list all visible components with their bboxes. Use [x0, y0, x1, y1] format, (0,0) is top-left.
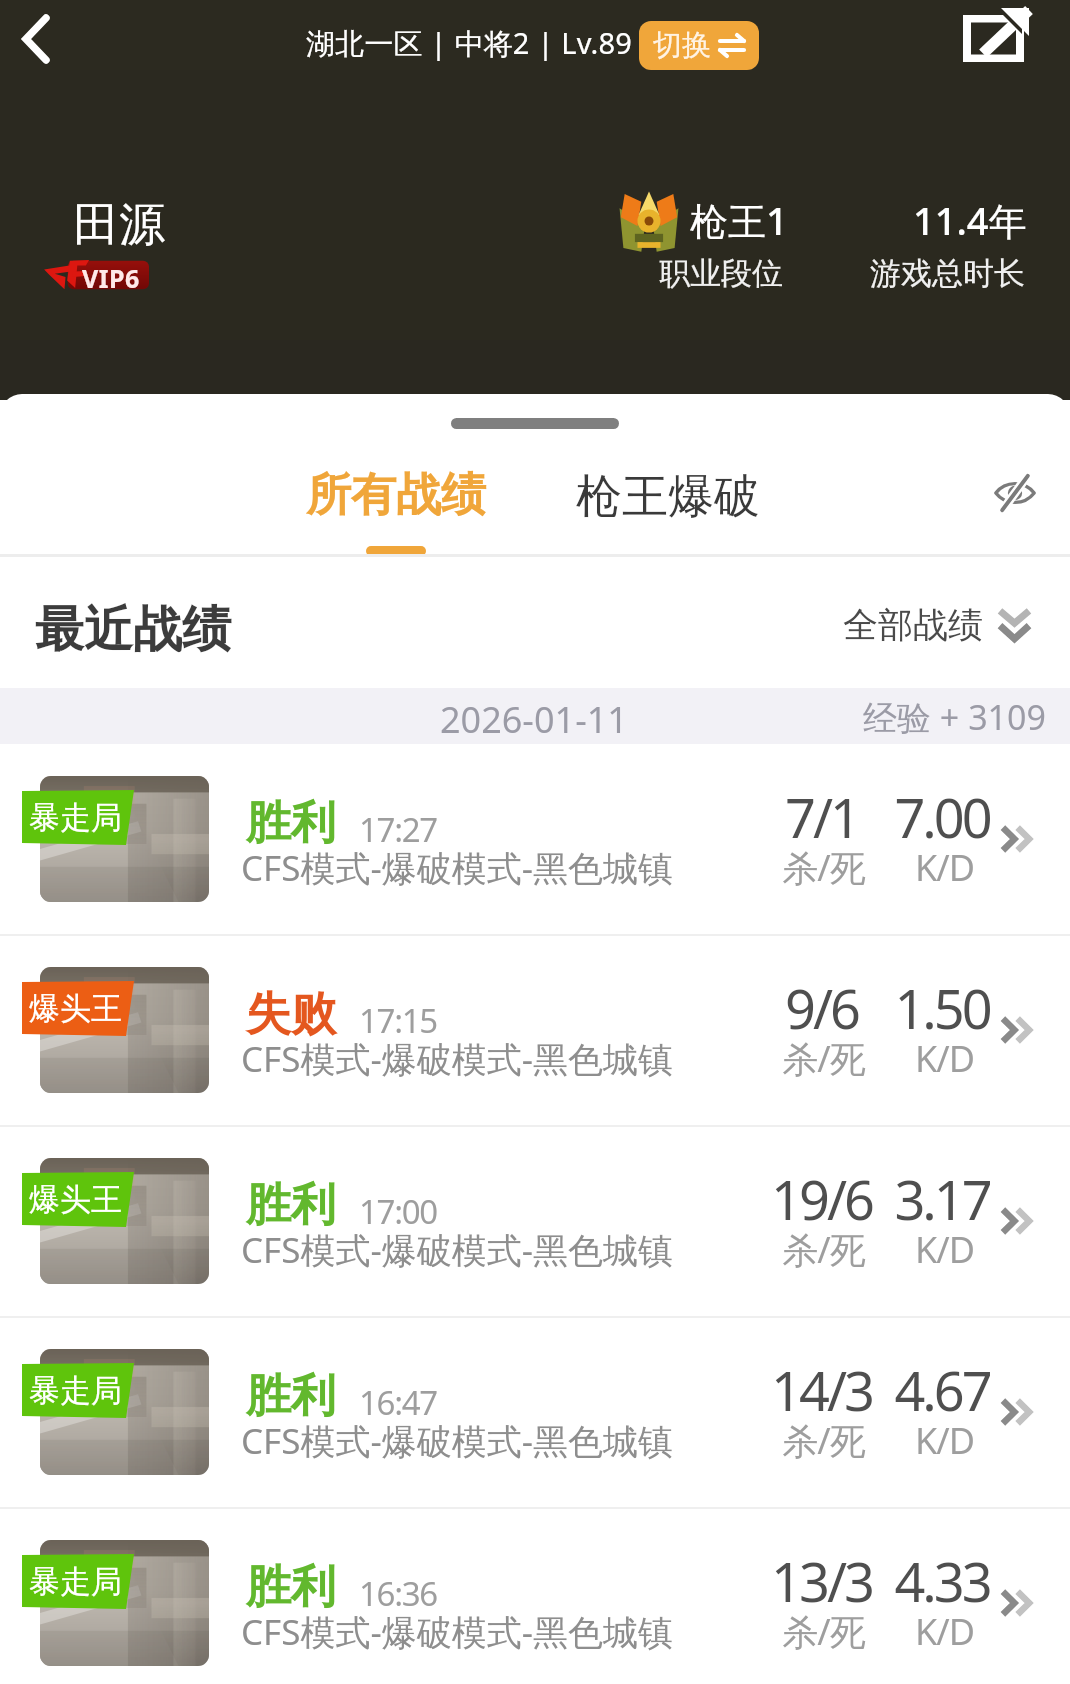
button[interactable]: Back: [0, 0, 78, 78]
staticText: 11.4年: [913, 194, 1027, 246]
staticText: 16:36: [359, 1571, 437, 1616]
button[interactable]: 暴走局: [0, 1509, 1070, 1684]
staticText: VIP6: [82, 261, 140, 295]
staticText: CFS模式-爆破模式-黑色城镇: [241, 1417, 674, 1465]
staticText: CFS模式-爆破模式-黑色城镇: [241, 1608, 674, 1656]
button[interactable]: Hide stats: [977, 464, 1053, 522]
staticText: K/D: [915, 1416, 974, 1465]
staticText: 14/3: [771, 1353, 872, 1427]
staticText: 17:27: [359, 807, 437, 852]
staticText: 爆头王: [29, 989, 122, 1028]
staticText: K/D: [915, 1225, 974, 1274]
button[interactable]: 枪王爆破: [576, 468, 760, 526]
button[interactable]: 爆头王: [0, 1127, 1070, 1318]
staticText: 1.50: [894, 971, 990, 1045]
button[interactable]: 所有战绩: [306, 467, 486, 556]
staticText: 胜利: [246, 1368, 336, 1425]
staticText: 所有战绩: [306, 467, 486, 524]
staticText: 切换: [653, 27, 711, 64]
button[interactable]: 暴走局: [0, 745, 1070, 936]
staticText: 田源: [73, 196, 165, 254]
button[interactable]: 暴走局: [0, 1318, 1070, 1509]
staticText: CFS模式-爆破模式-黑色城镇: [241, 844, 674, 892]
staticText: 失败: [246, 986, 336, 1043]
staticText: 暴走局: [29, 798, 122, 837]
staticText: 胜利: [246, 1559, 336, 1616]
button[interactable]: 全部战绩: [843, 603, 1030, 647]
button[interactable]: 爆头王: [0, 936, 1070, 1127]
staticText: 杀/死: [782, 843, 865, 892]
staticText: K/D: [915, 1034, 974, 1083]
staticText: 4.67: [894, 1353, 990, 1427]
staticText: 9/6: [785, 971, 858, 1045]
staticText: 游戏总时长: [870, 254, 1025, 293]
staticText: 16:47: [359, 1380, 437, 1425]
staticText: 湖北一区 | 中将2 | Lv.89: [306, 23, 633, 63]
staticText: 杀/死: [782, 1034, 865, 1083]
button[interactable]: 切换: [639, 21, 759, 70]
staticText: 杀/死: [782, 1225, 865, 1274]
staticText: 胜利: [246, 1177, 336, 1234]
staticText: 3.17: [894, 1162, 990, 1236]
staticText: 暴走局: [29, 1562, 122, 1601]
staticText: K/D: [915, 843, 974, 892]
staticText: 杀/死: [782, 1607, 865, 1656]
staticText: 全部战绩: [843, 603, 983, 647]
staticText: 最近战绩: [35, 599, 231, 661]
staticText: 职业段位: [659, 254, 783, 293]
staticText: 7/1: [785, 780, 858, 854]
staticText: 17:00: [359, 1189, 437, 1234]
staticText: 枪王爆破: [576, 468, 760, 526]
staticText: 暴走局: [29, 1371, 122, 1410]
staticText: CFS模式-爆破模式-黑色城镇: [241, 1226, 674, 1274]
staticText: K/D: [915, 1607, 974, 1656]
staticText: 7.00: [894, 780, 990, 854]
staticText: 杀/死: [782, 1416, 865, 1465]
staticText: 19/6: [771, 1162, 872, 1236]
staticText: 2026-01-11: [440, 695, 628, 744]
staticText: 经验 + 3109: [863, 694, 1046, 740]
staticText: 4.33: [894, 1544, 990, 1618]
staticText: 17:15: [359, 998, 437, 1043]
staticText: 枪王1: [690, 194, 788, 246]
button[interactable]: Share: [950, 3, 1038, 77]
staticText: 胜利: [246, 795, 336, 852]
staticText: 爆头王: [29, 1180, 122, 1219]
staticText: CFS模式-爆破模式-黑色城镇: [241, 1035, 674, 1083]
staticText: 13/3: [771, 1544, 872, 1618]
